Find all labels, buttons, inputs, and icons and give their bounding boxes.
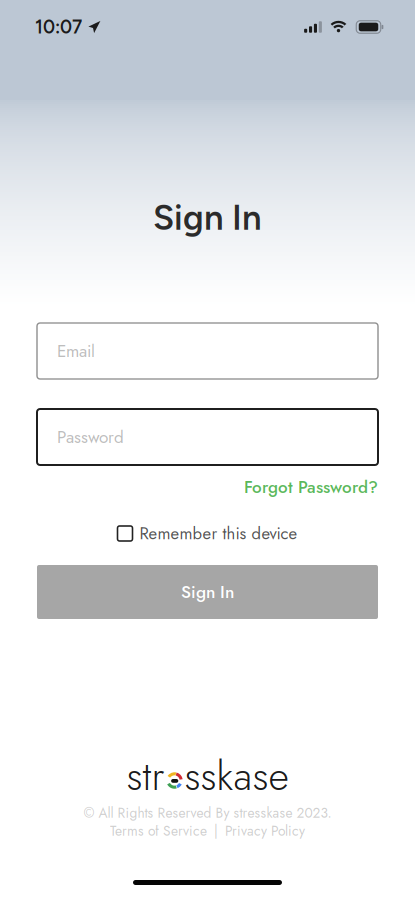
- staticText: str: [126, 747, 164, 805]
- button[interactable]: Sign In: [37, 565, 378, 619]
- staticText: Password: [57, 425, 124, 449]
- staticText: 10:07: [35, 16, 82, 38]
- button[interactable]: Remember this device: [117, 522, 297, 545]
- staticText: Privacy Policy: [225, 821, 305, 841]
- staticText: Sign In: [181, 579, 234, 604]
- staticText: © All Rights Reserved By stresskase 2023…: [83, 803, 331, 823]
- staticText: Forgot Password?: [244, 475, 378, 499]
- staticText: sskase: [184, 747, 288, 805]
- staticText: |: [214, 821, 218, 841]
- staticText: Remember this device: [139, 521, 297, 546]
- button[interactable]: Forgot Password?: [244, 475, 378, 499]
- button[interactable]: Privacy Policy: [225, 821, 305, 841]
- button[interactable]: Password: [37, 409, 378, 465]
- staticText: Terms of Service: [110, 821, 207, 841]
- staticText: Email: [57, 339, 95, 363]
- staticText: Sign In: [153, 197, 262, 238]
- button[interactable]: Terms of Service: [110, 821, 207, 841]
- button[interactable]: Email: [37, 323, 378, 379]
